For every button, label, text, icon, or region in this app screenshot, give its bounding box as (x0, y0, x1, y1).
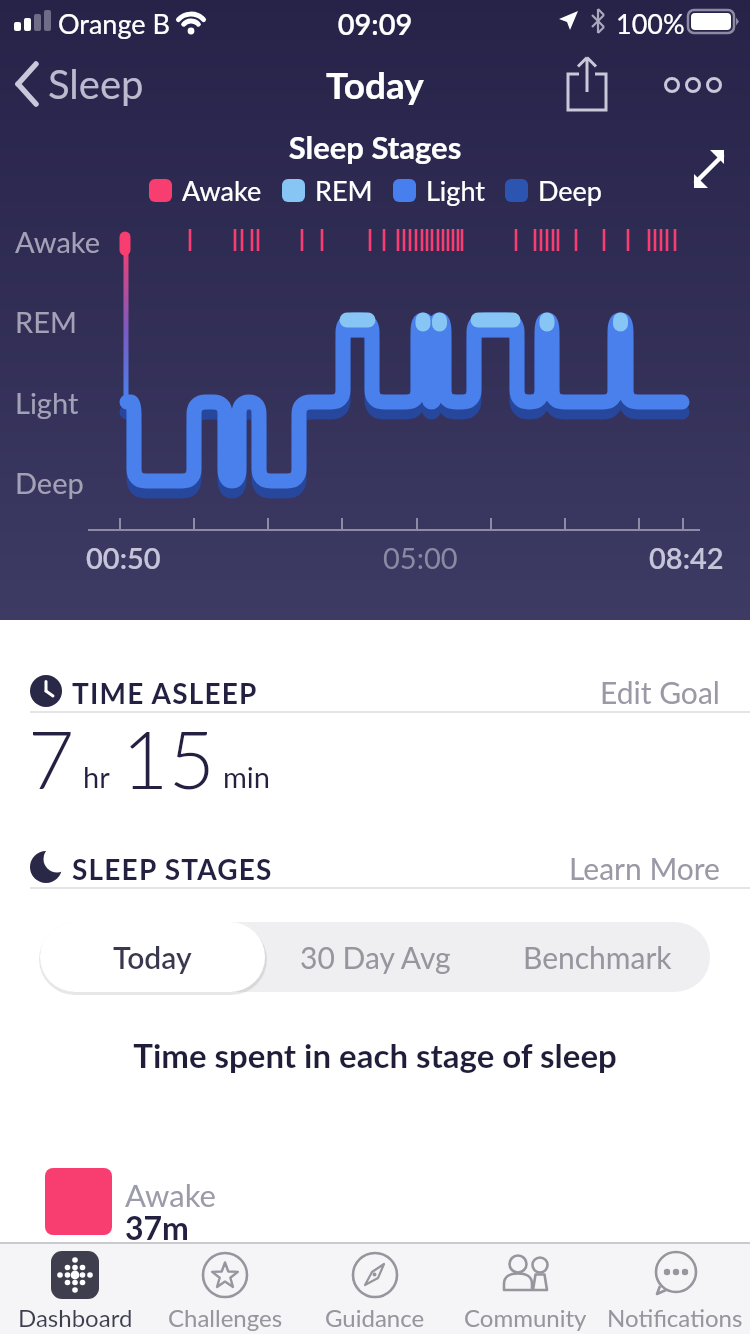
staticText: SLEEP STAGES (72, 852, 273, 886)
staticText: 37m (125, 1208, 189, 1246)
staticText: Awake (182, 174, 262, 206)
staticText: REM (315, 174, 373, 206)
staticText: Orange B (58, 7, 170, 39)
button[interactable]: Guidance (300, 1242, 450, 1334)
staticText: Benchmark (523, 939, 672, 975)
staticText: Guidance (325, 1303, 425, 1332)
button[interactable]: Dashboard (0, 1242, 150, 1334)
button[interactable]: Learn More (569, 850, 720, 886)
staticText: 30 Day Avg (300, 939, 451, 975)
staticText: 00:50 (86, 540, 161, 575)
staticText: Sleep (48, 60, 144, 108)
staticText: Light (15, 385, 79, 420)
staticText: Deep (538, 174, 602, 206)
button[interactable]: Challenges (150, 1242, 300, 1334)
button[interactable]: Notifications (600, 1242, 750, 1334)
button[interactable] (688, 148, 730, 190)
staticText: 100% (616, 7, 685, 39)
staticText: 09:09 (0, 6, 750, 41)
staticText: Light (426, 174, 485, 206)
staticText: Sleep Stages (0, 128, 750, 165)
staticText: TIME ASLEEP (72, 676, 258, 710)
staticText: Deep (15, 465, 84, 500)
staticText: Challenges (168, 1303, 283, 1332)
staticText: Awake (125, 1176, 216, 1213)
staticText: Dashboard (18, 1303, 133, 1332)
button[interactable]: Sleep (14, 46, 144, 122)
button[interactable]: Today (40, 922, 265, 992)
staticText: 15 (122, 710, 215, 806)
button[interactable] (663, 70, 733, 100)
button[interactable]: 30 Day Avg (265, 922, 485, 992)
button[interactable]: Edit Goal (600, 674, 720, 710)
button[interactable] (564, 56, 612, 114)
staticText: Today (113, 939, 192, 975)
button[interactable]: Benchmark (485, 922, 710, 992)
staticText: hr (83, 759, 110, 794)
staticText: 08:42 (649, 540, 724, 575)
staticText: Today (0, 62, 750, 106)
staticText: Time spent in each stage of sleep (0, 1035, 750, 1075)
staticText: Community (464, 1303, 587, 1332)
staticText: 7 (28, 710, 75, 806)
staticText: REM (15, 304, 77, 339)
staticText: min (223, 759, 270, 794)
staticText: 05:00 (383, 540, 458, 575)
button[interactable]: Community (450, 1242, 600, 1334)
staticText: Awake (15, 224, 101, 259)
staticText: Notifications (607, 1303, 743, 1332)
